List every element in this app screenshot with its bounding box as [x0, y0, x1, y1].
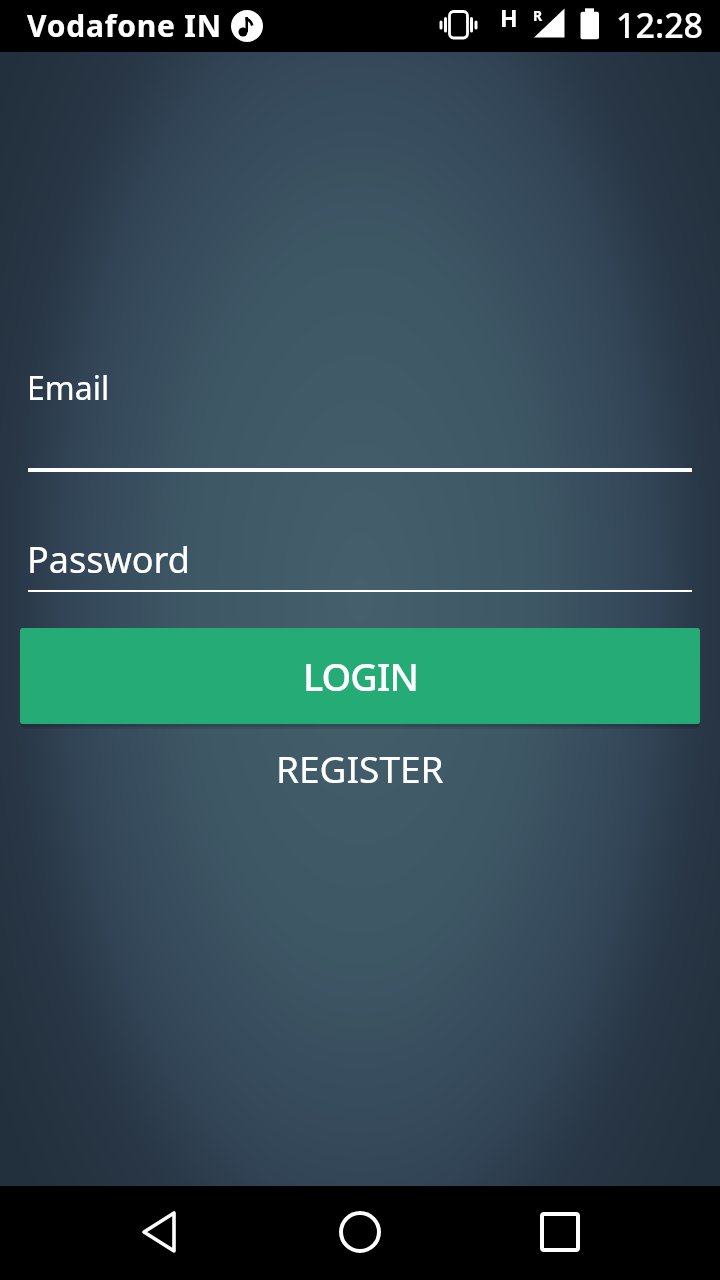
staticText: Email [27, 366, 110, 410]
staticText: 12:28 [616, 2, 704, 48]
staticText: Vodafone IN [27, 5, 223, 46]
staticText: R [533, 6, 543, 25]
staticText: H [500, 2, 518, 33]
staticText: Password [27, 535, 190, 584]
staticText: LOGIN [303, 650, 418, 702]
button[interactable] [120, 1186, 200, 1280]
button[interactable]: LOGIN [20, 628, 700, 724]
button[interactable] [520, 1186, 600, 1280]
button[interactable]: REGISTER [240, 736, 480, 800]
staticText: REGISTER [276, 743, 444, 793]
button[interactable] [320, 1186, 400, 1280]
